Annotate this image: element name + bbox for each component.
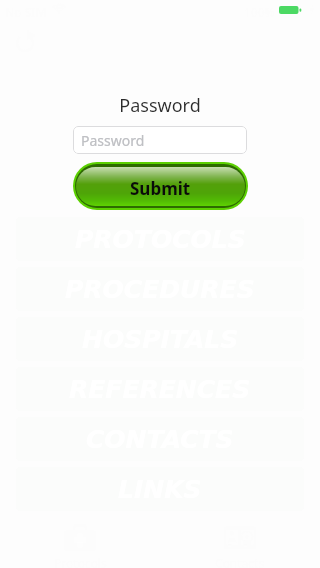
staticText: Password (81, 131, 145, 150)
button[interactable]: Password (73, 126, 247, 154)
staticText: Password (119, 93, 201, 118)
button[interactable]: Submit (73, 162, 248, 210)
staticText: Submit (130, 177, 191, 200)
